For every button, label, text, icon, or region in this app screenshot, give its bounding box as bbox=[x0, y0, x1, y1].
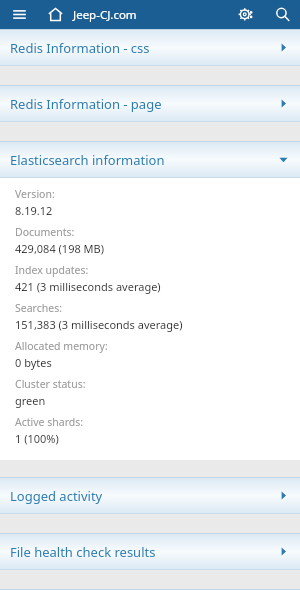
staticText: Elasticsearch information bbox=[10, 151, 278, 169]
staticText: Jeep-CJ.com bbox=[73, 7, 137, 23]
button[interactable]: File health check results bbox=[0, 533, 300, 570]
button[interactable]: Redis Information - css bbox=[0, 29, 300, 66]
staticText: File health check results bbox=[10, 543, 278, 561]
staticText: 1 (100%) bbox=[15, 431, 59, 446]
staticText: Allocated memory: bbox=[15, 339, 108, 353]
staticText: 151,383 (3 milliseconds average) bbox=[15, 317, 183, 332]
staticText: 421 (3 milliseconds average) bbox=[15, 279, 161, 294]
staticText: Redis Information - page bbox=[10, 95, 278, 113]
staticText: green bbox=[15, 393, 46, 408]
staticText: Searches: bbox=[15, 301, 62, 315]
staticText: 0 bytes bbox=[15, 355, 52, 370]
button[interactable]: Search bbox=[264, 0, 300, 29]
staticText: Documents: bbox=[15, 225, 75, 239]
button[interactable]: Elasticsearch information bbox=[0, 141, 300, 178]
button[interactable]: Redis Information - page bbox=[0, 85, 300, 122]
staticText: Redis Information - css bbox=[10, 39, 278, 57]
staticText: Version: bbox=[15, 187, 55, 201]
staticText: 429,084 (198 MB) bbox=[15, 241, 105, 256]
button[interactable]: Menu bbox=[0, 0, 38, 29]
staticText: Index updates: bbox=[15, 263, 89, 277]
button[interactable]: Home bbox=[38, 0, 72, 29]
button[interactable]: Logged activity bbox=[0, 477, 300, 514]
staticText: Logged activity bbox=[10, 487, 278, 505]
staticText: 8.19.12 bbox=[15, 203, 53, 218]
staticText: Cluster status: bbox=[15, 377, 86, 391]
button[interactable]: Settings bbox=[228, 0, 264, 29]
staticText: Active shards: bbox=[15, 415, 84, 429]
